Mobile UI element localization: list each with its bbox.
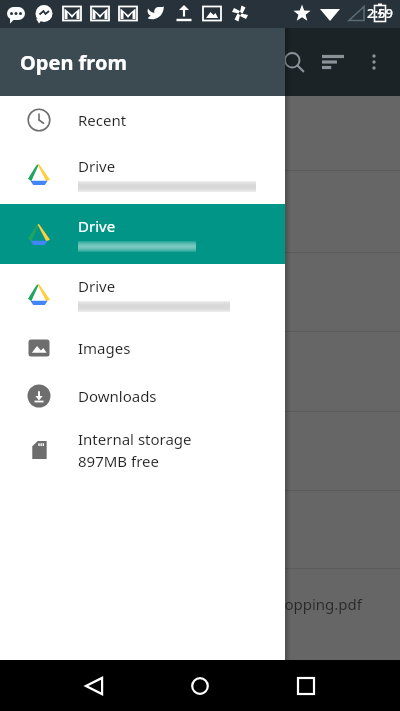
button[interactable]: Search <box>270 38 318 86</box>
button[interactable]: Home <box>172 660 228 711</box>
button[interactable]: More options <box>352 40 396 84</box>
staticText: Downloads <box>78 386 157 406</box>
button[interactable]: Back <box>66 660 122 711</box>
button[interactable]: Drive <box>0 264 285 324</box>
staticText: 897MB free <box>78 451 159 471</box>
button[interactable]: Internal storage <box>0 420 285 480</box>
button[interactable]: Drive <box>0 144 285 204</box>
staticText: 2:59 <box>367 4 393 22</box>
staticText: Internal storage <box>78 429 192 449</box>
button[interactable]: Downloads <box>0 372 285 420</box>
button[interactable]: Drive <box>0 204 285 264</box>
button[interactable]: Recent <box>0 96 285 144</box>
staticText: Recent <box>78 110 127 130</box>
staticText: Drive <box>78 156 116 176</box>
button[interactable]: Recents <box>278 660 334 711</box>
staticText: Drive <box>78 216 116 236</box>
staticText: Open from <box>20 49 127 76</box>
staticText: Weekly shopping.pdf <box>214 594 362 614</box>
staticText: Images <box>78 338 131 358</box>
staticText: Drive <box>78 276 116 296</box>
button[interactable]: Images <box>0 324 285 372</box>
button[interactable]: Sort <box>309 38 357 86</box>
